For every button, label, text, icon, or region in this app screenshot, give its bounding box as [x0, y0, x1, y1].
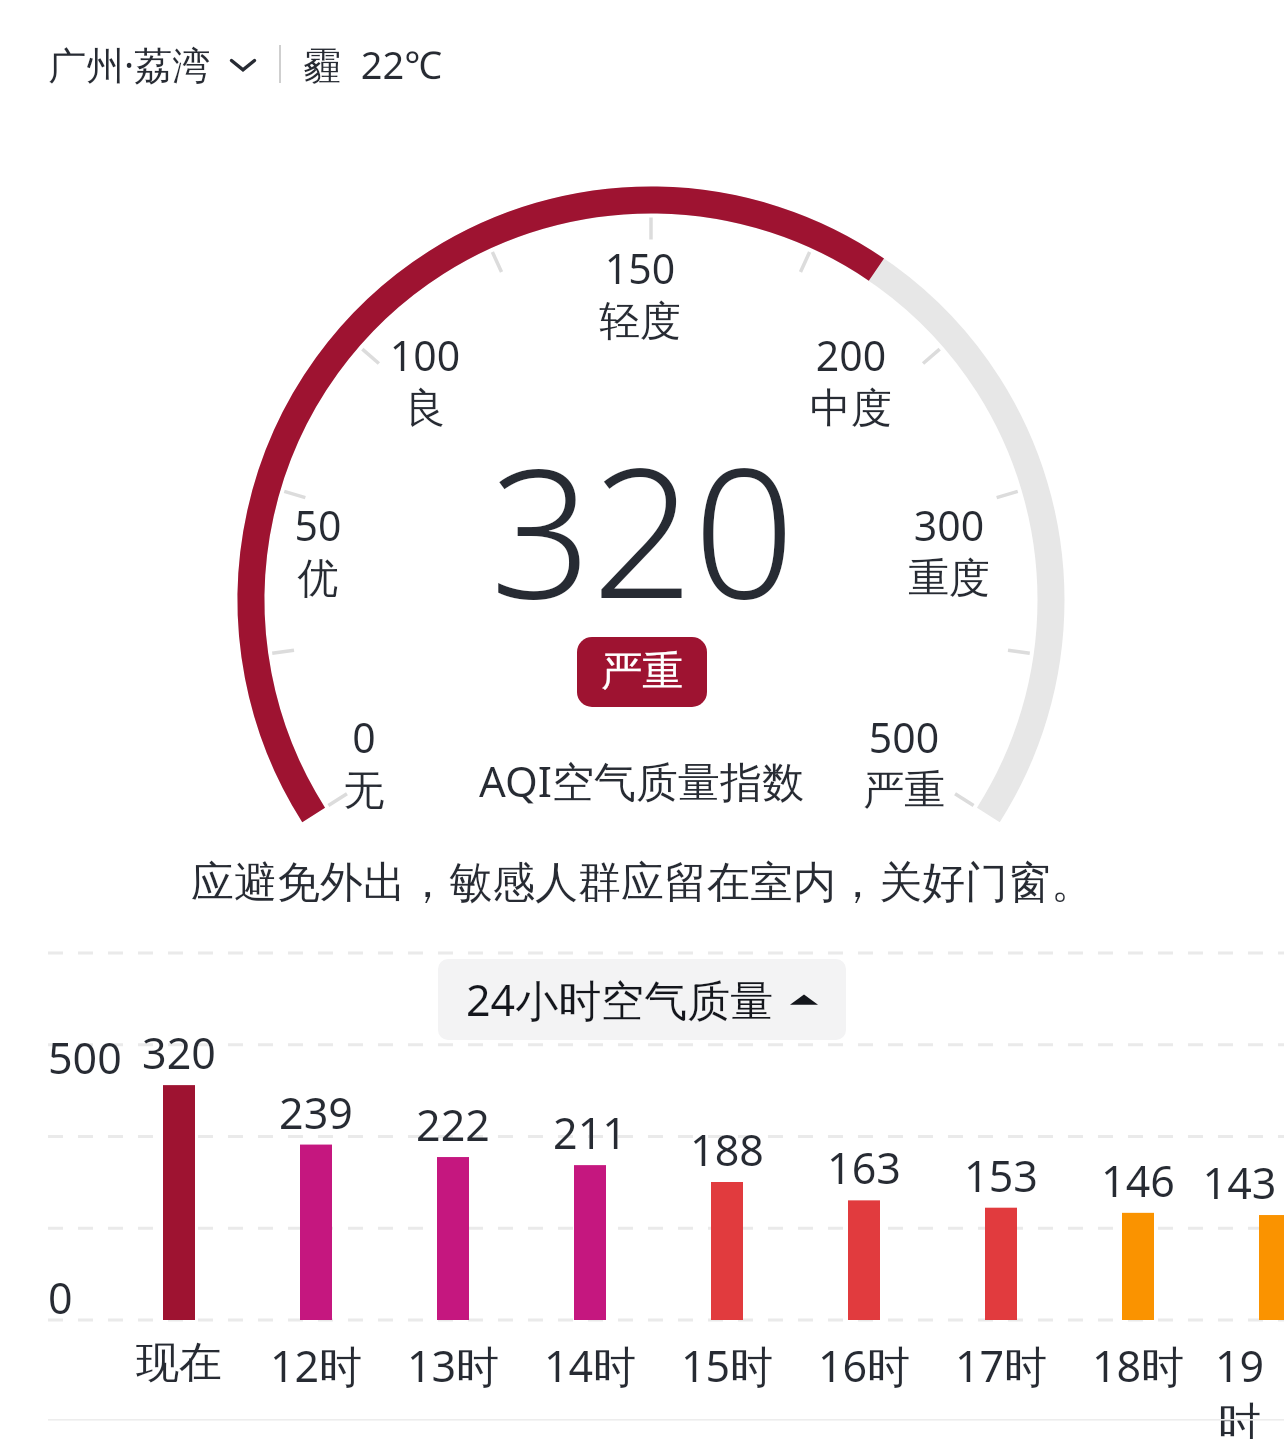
staticText: 中度	[751, 383, 951, 435]
staticText: 广州·荔湾	[48, 38, 211, 90]
staticText: 500	[48, 1028, 122, 1087]
staticText: 200	[751, 327, 951, 383]
staticText: 现在	[99, 1336, 259, 1390]
staticText: 严重	[804, 765, 1004, 817]
staticText: 0	[264, 709, 464, 765]
staticText: 应避免外出，敏感人群应留在室内，关好门窗。	[191, 856, 1094, 910]
staticText: 15时	[647, 1336, 807, 1395]
button[interactable]: 222	[373, 1095, 533, 1154]
button[interactable]: 188	[647, 1120, 807, 1179]
staticText: 222	[373, 1095, 533, 1154]
staticText: 18时	[1058, 1336, 1218, 1395]
staticText: 严重	[601, 646, 683, 698]
button[interactable]: 24小时空气质量	[438, 959, 846, 1040]
staticText: 14时	[510, 1336, 670, 1395]
button[interactable]: 211	[510, 1103, 670, 1162]
button[interactable]: 146	[1058, 1151, 1218, 1210]
staticText: 146	[1058, 1151, 1218, 1210]
staticText: 良	[325, 383, 525, 435]
staticText: 24小时空气质量	[466, 970, 774, 1029]
staticText: 320	[99, 1023, 259, 1082]
button[interactable]: 163	[784, 1138, 944, 1197]
staticText: 320	[490, 408, 795, 650]
button[interactable]: 严重	[577, 637, 707, 707]
button[interactable]: 153	[921, 1146, 1081, 1205]
staticText: 100	[325, 327, 525, 383]
staticText: 211	[510, 1103, 670, 1162]
staticText: 500	[804, 709, 1004, 765]
staticText: 188	[647, 1120, 807, 1179]
staticText: 13时	[373, 1336, 533, 1395]
staticText: 轻度	[540, 296, 740, 348]
staticText: 153	[921, 1146, 1081, 1205]
staticText: 17时	[921, 1336, 1081, 1395]
staticText: 12时	[236, 1336, 396, 1395]
staticText: 19时	[1195, 1336, 1284, 1439]
staticText: AQI空气质量指数	[479, 752, 805, 809]
staticText: 150	[540, 240, 740, 296]
staticText: 优	[218, 553, 418, 605]
staticText: 16时	[784, 1336, 944, 1395]
button[interactable]: 239	[236, 1083, 396, 1142]
staticText: 无	[264, 765, 464, 817]
button[interactable]: 广州·荔湾	[48, 38, 259, 90]
staticText: 重度	[849, 553, 1049, 605]
staticText: 0	[48, 1268, 73, 1327]
staticText: 霾 22℃	[303, 38, 443, 90]
staticText: 50	[218, 497, 418, 553]
other: Choose city	[227, 48, 259, 80]
staticText: 143	[1195, 1153, 1284, 1212]
button[interactable]: 320	[99, 1023, 259, 1082]
staticText: 163	[784, 1138, 944, 1197]
staticText: 300	[849, 497, 1049, 553]
staticText: 239	[236, 1083, 396, 1142]
button[interactable]: 143	[1195, 1153, 1284, 1212]
